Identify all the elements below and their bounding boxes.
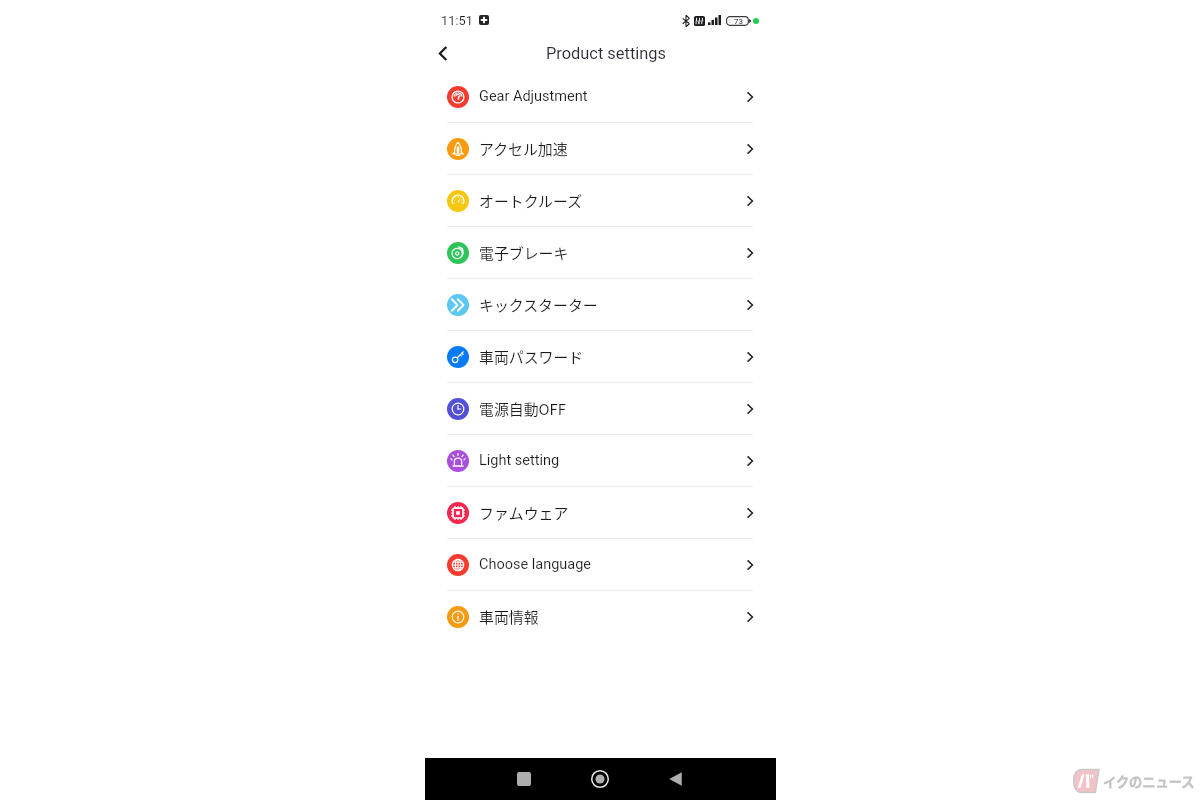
- button[interactable]: キックスターター: [425, 279, 776, 330]
- button[interactable]: Gear Adjustment: [425, 71, 776, 122]
- staticText: Light setting: [479, 452, 560, 469]
- staticText: イクのニュース: [1103, 772, 1195, 791]
- button[interactable]: Home: [579, 758, 621, 800]
- staticText: 電源自動OFF: [479, 398, 567, 420]
- staticText: アクセル加速: [479, 138, 568, 160]
- button[interactable]: Back: [425, 35, 461, 71]
- staticText: 73: [734, 17, 744, 26]
- button[interactable]: オートクルーズ: [425, 175, 776, 226]
- staticText: Gear Adjustment: [479, 88, 588, 105]
- button[interactable]: 電源自動OFF: [425, 383, 776, 434]
- button[interactable]: 車両情報: [425, 591, 776, 642]
- staticText: 11:51: [441, 13, 473, 28]
- staticText: Product settings: [546, 44, 666, 63]
- staticText: 車両情報: [479, 606, 539, 628]
- staticText: オートクルーズ: [479, 190, 583, 212]
- button[interactable]: ファムウェア: [425, 487, 776, 538]
- button[interactable]: Choose language: [425, 539, 776, 590]
- button[interactable]: 車両パスワード: [425, 331, 776, 382]
- button[interactable]: Recent apps: [503, 758, 545, 800]
- staticText: キックスターター: [479, 294, 598, 316]
- button[interactable]: アクセル加速: [425, 123, 776, 174]
- button[interactable]: Light setting: [425, 435, 776, 486]
- staticText: Choose language: [479, 556, 592, 573]
- button[interactable]: Back: [654, 758, 696, 800]
- button[interactable]: 電子ブレーキ: [425, 227, 776, 278]
- staticText: ファムウェア: [479, 502, 569, 524]
- staticText: 車両パスワード: [479, 346, 584, 368]
- staticText: 電子ブレーキ: [479, 242, 569, 264]
